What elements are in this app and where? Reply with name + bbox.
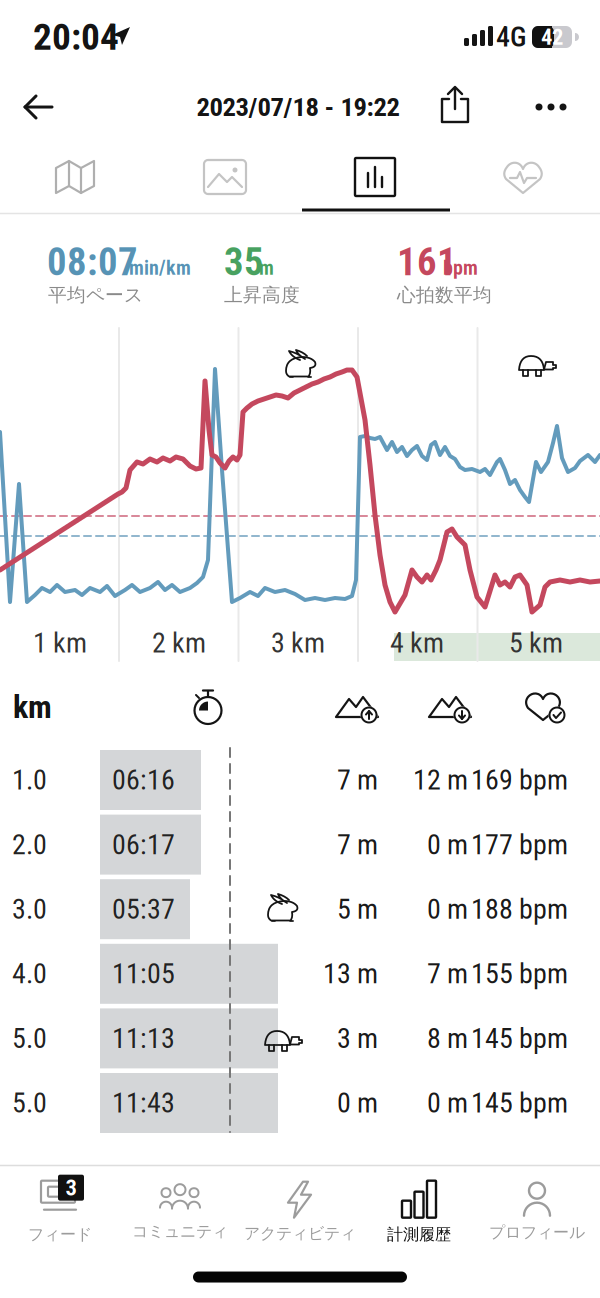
staticText: 3 km	[271, 627, 325, 659]
staticText: フィード	[28, 1225, 92, 1244]
staticText: 06:17	[112, 829, 175, 861]
button[interactable]: Share	[433, 83, 477, 127]
staticText: 0 m	[427, 893, 468, 925]
button[interactable]: Photos	[150, 148, 300, 206]
staticText: 4.0	[12, 958, 47, 990]
button[interactable]: Map	[0, 148, 150, 206]
staticText: 1.0	[12, 764, 47, 796]
staticText: 145 bpm	[471, 1087, 568, 1119]
staticText: 0 m	[427, 829, 468, 861]
staticText: 2.0	[12, 829, 47, 861]
staticText: アクティビティ	[244, 1224, 356, 1243]
staticText: コミュニティ	[132, 1222, 228, 1241]
staticText: 計測履歴	[387, 1225, 451, 1244]
staticText: 0 m	[427, 1087, 468, 1119]
staticText: 11:05	[112, 958, 175, 990]
staticText: 5 km	[509, 627, 563, 659]
button[interactable]: 計測履歴	[360, 1167, 478, 1257]
staticText: 2 km	[152, 627, 206, 659]
staticText: 5.0	[12, 1087, 47, 1119]
staticText: 145 bpm	[471, 1022, 568, 1054]
staticText: プロフィール	[489, 1223, 585, 1242]
staticText: 3 m	[337, 1022, 378, 1054]
staticText: 13 m	[323, 958, 378, 990]
staticText: 8 m	[427, 1022, 468, 1054]
staticText: 08:07	[47, 240, 138, 284]
staticText: 上昇高度	[224, 283, 300, 306]
staticText: 7 m	[427, 958, 468, 990]
staticText: 5 m	[337, 893, 378, 925]
staticText: 7 m	[337, 764, 378, 796]
staticText: 5.0	[12, 1022, 47, 1054]
staticText: 7 m	[337, 829, 378, 861]
button[interactable]: アクティビティ	[240, 1167, 360, 1257]
staticText: bpm	[443, 257, 478, 279]
staticText: 4G	[496, 21, 526, 53]
staticText: 188 bpm	[471, 893, 568, 925]
button[interactable]: Heart rate	[448, 148, 598, 206]
staticText: 11:13	[112, 1022, 175, 1054]
button[interactable]: More	[529, 85, 573, 129]
button[interactable]: Back	[14, 85, 62, 129]
staticText: 1 km	[33, 627, 87, 659]
staticText: 3	[65, 1175, 76, 1201]
staticText: 35	[224, 240, 264, 284]
staticText: 4 km	[390, 627, 444, 659]
staticText: 11:43	[112, 1087, 175, 1119]
staticText: min/km	[129, 257, 191, 279]
button[interactable]: フィード	[1, 1167, 119, 1257]
staticText: 169 bpm	[471, 764, 568, 796]
staticText: 3.0	[12, 893, 47, 925]
staticText: 0 m	[337, 1087, 378, 1119]
button[interactable]: Splits	[300, 148, 450, 206]
staticText: 177 bpm	[471, 829, 568, 861]
button[interactable]: プロフィール	[478, 1167, 596, 1257]
staticText: 心拍数平均	[397, 283, 492, 306]
staticText: m	[259, 257, 274, 279]
button[interactable]: コミュニティ	[121, 1167, 239, 1257]
staticText: 161	[397, 240, 457, 284]
staticText: km	[13, 689, 52, 725]
staticText: 06:16	[112, 764, 175, 796]
staticText: 155 bpm	[471, 958, 568, 990]
staticText: 12 m	[413, 764, 468, 796]
staticText: 42	[541, 24, 563, 50]
staticText: 05:37	[112, 893, 175, 925]
staticText: 2023/07/18 - 19:22	[196, 92, 399, 122]
staticText: 20:04	[33, 16, 119, 58]
staticText: 平均ペース	[48, 283, 143, 306]
